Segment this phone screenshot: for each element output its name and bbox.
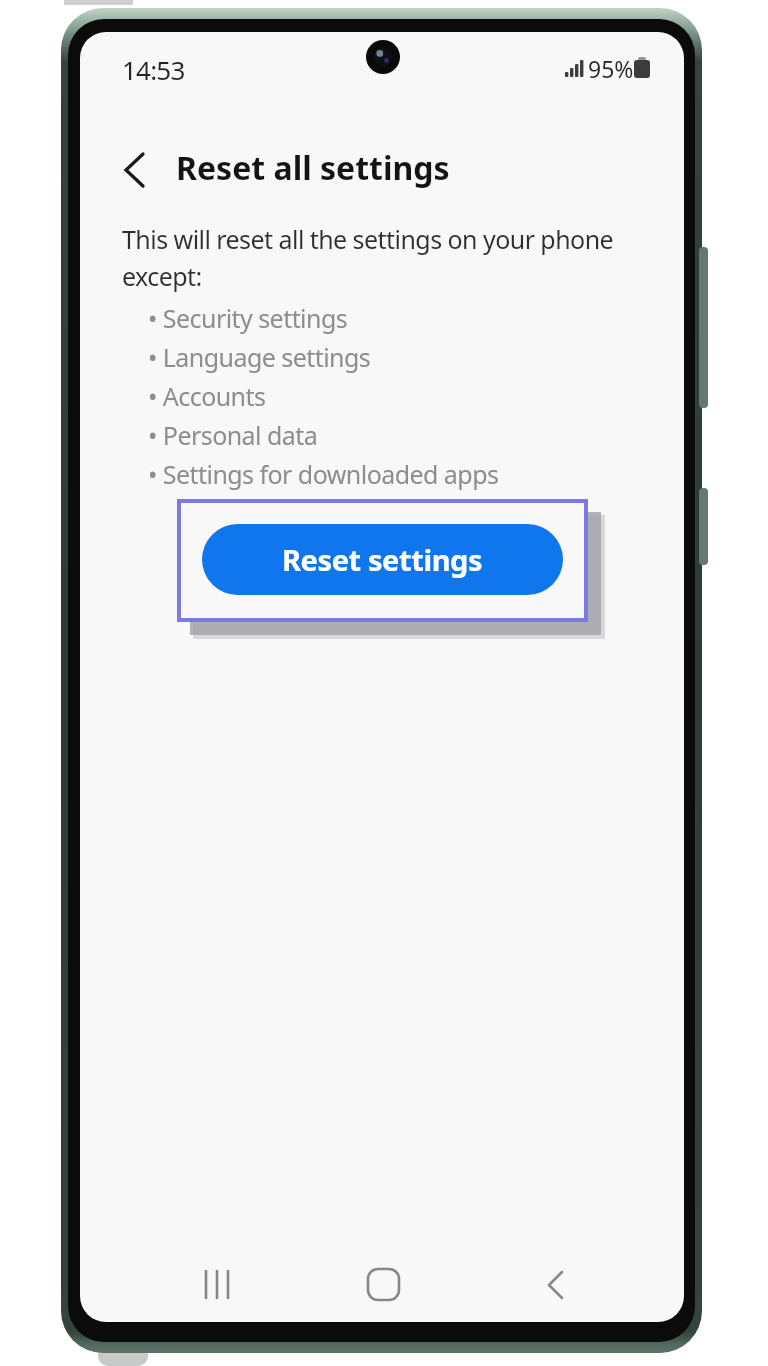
staticText: Reset all settings [176, 146, 450, 190]
button[interactable] [361, 1262, 406, 1307]
staticText: • Personal data [148, 418, 318, 452]
staticText: 95% [588, 53, 634, 84]
staticText: • Accounts [148, 379, 266, 413]
staticText: This will reset all the settings on your… [122, 222, 614, 256]
staticText: • Security settings [148, 301, 348, 335]
button[interactable]: Reset settings [202, 524, 563, 595]
staticText: • Language settings [148, 340, 371, 374]
staticText: • Settings for downloaded apps [148, 457, 499, 491]
staticText: 14:53 [122, 52, 185, 87]
staticText: Reset settings [282, 540, 483, 579]
button[interactable] [118, 150, 152, 190]
staticText: except: [122, 259, 202, 293]
button[interactable] [536, 1263, 576, 1307]
button[interactable] [196, 1264, 240, 1308]
